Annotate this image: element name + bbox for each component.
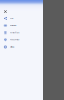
button[interactable]: Terms of Use xyxy=(0,29,43,36)
staticText: Contact us xyxy=(10,25,17,26)
button[interactable]: Share xyxy=(0,15,43,22)
button[interactable]: Close menu xyxy=(2,8,9,15)
button[interactable]: Settings xyxy=(0,43,43,51)
staticText: Settings xyxy=(10,46,15,48)
button[interactable]: Contact us xyxy=(0,22,43,29)
staticText: Terms of Use xyxy=(10,32,20,33)
staticText: Privacy Policy xyxy=(10,39,20,41)
staticText: Share xyxy=(10,18,14,19)
button[interactable]: Privacy Policy xyxy=(0,36,43,43)
